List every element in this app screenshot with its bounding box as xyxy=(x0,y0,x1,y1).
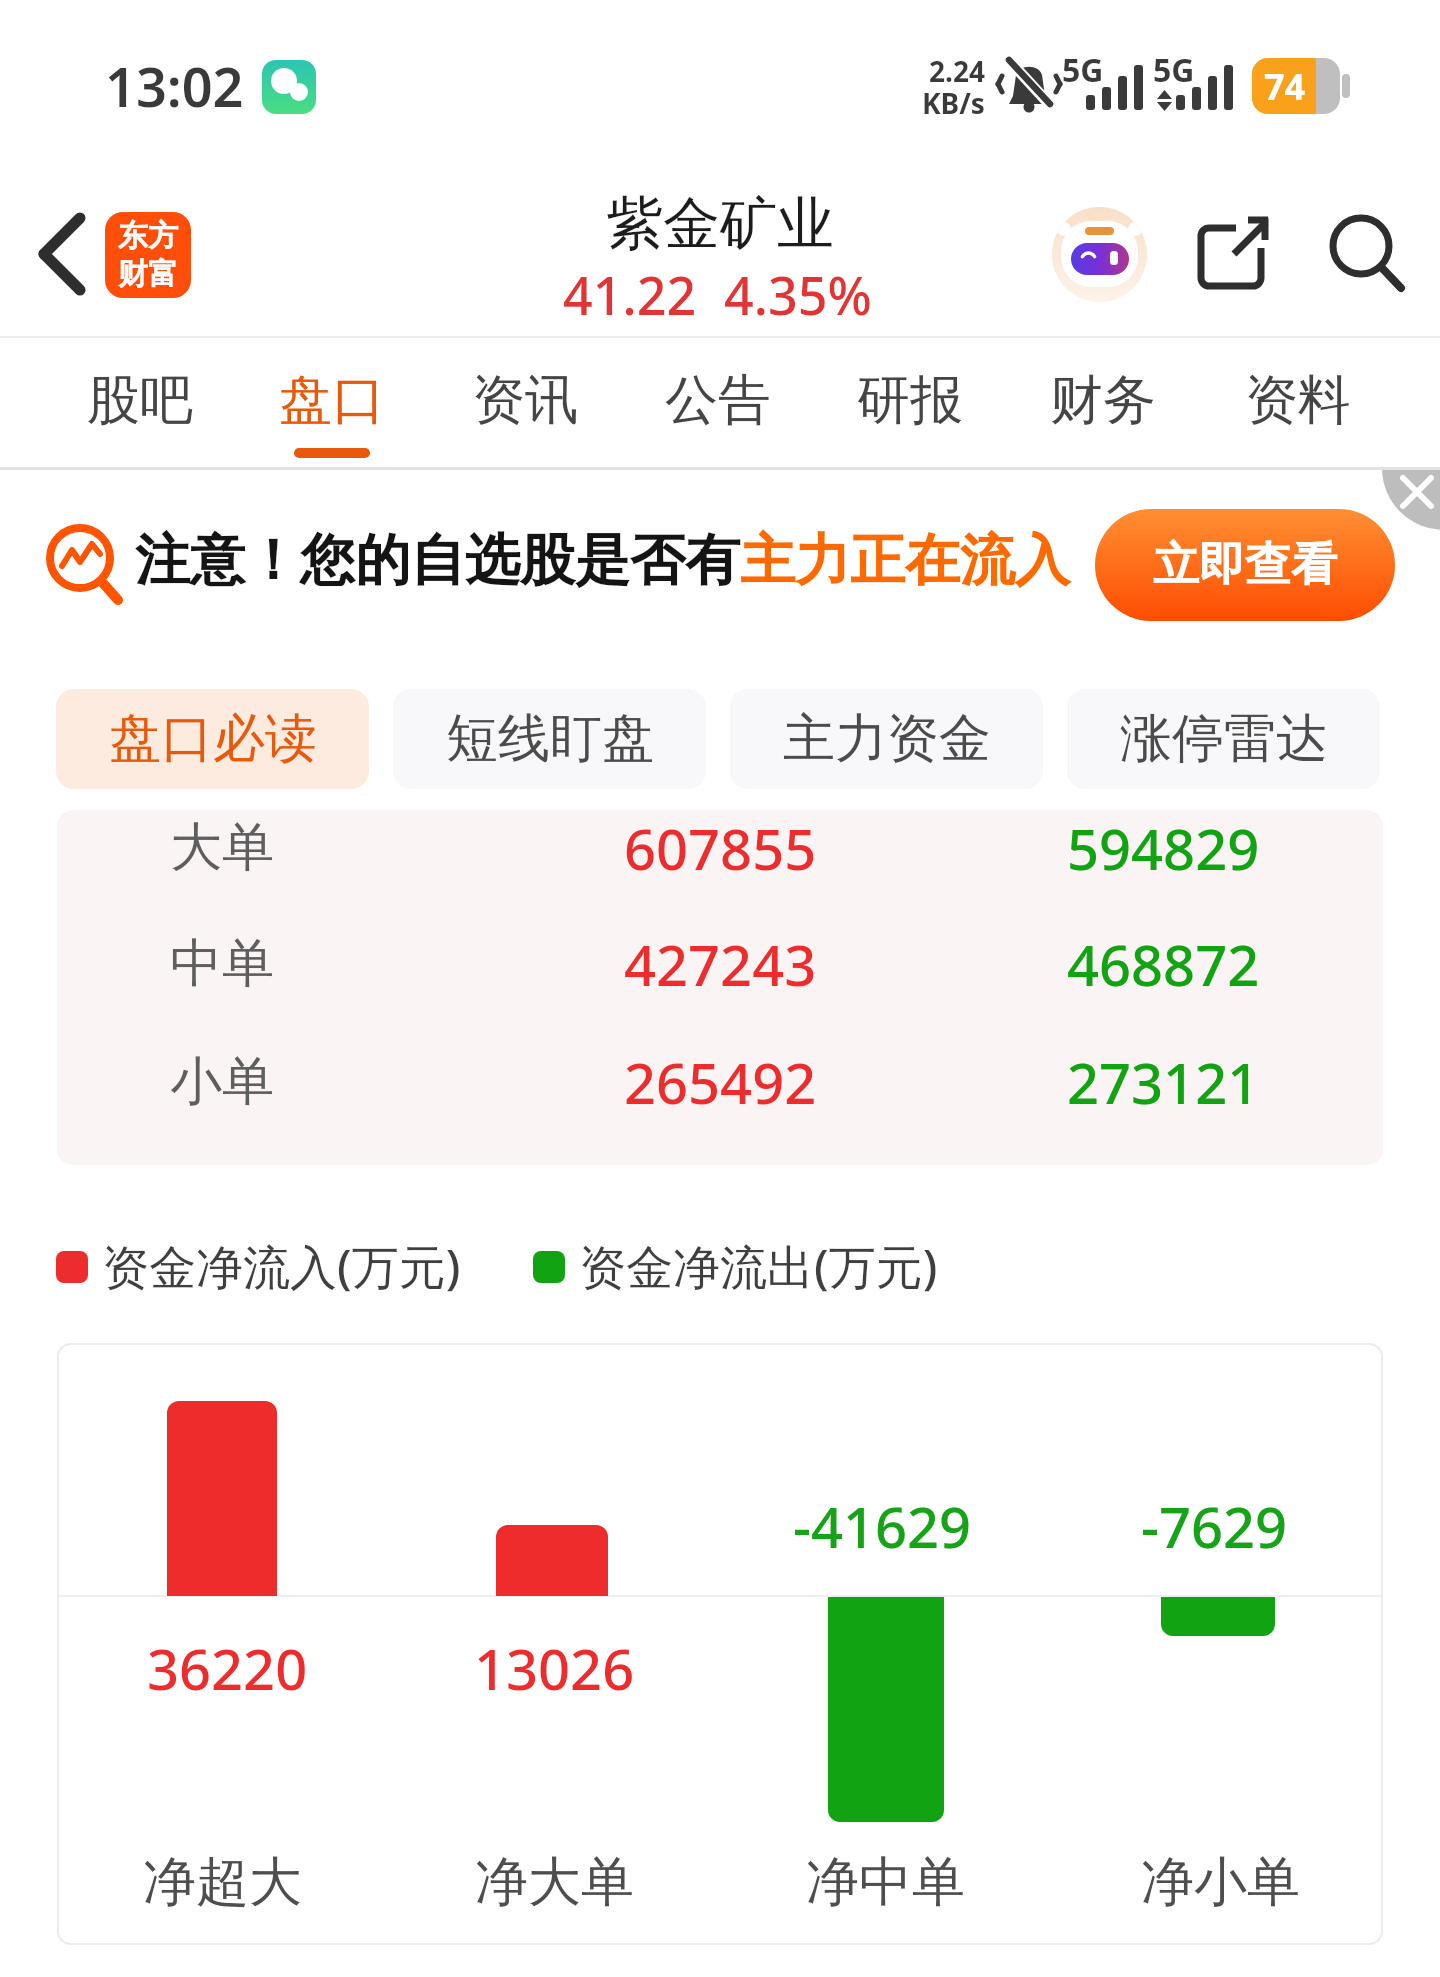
staticText: 净中单 xyxy=(806,1849,965,1916)
staticText: 短线盯盘 xyxy=(446,706,654,772)
button[interactable] xyxy=(28,208,100,300)
staticText: 东方 xyxy=(118,217,178,255)
staticText: 265492 xyxy=(624,1044,817,1120)
button[interactable]: 立即查看 xyxy=(1095,509,1395,621)
staticText: 资金净流出(万元) xyxy=(579,1234,938,1298)
button[interactable] xyxy=(1198,216,1272,290)
staticText: 公告 xyxy=(665,367,771,434)
staticText: -7629 xyxy=(1141,1488,1288,1564)
button[interactable]: 盘口 xyxy=(236,352,428,448)
staticText: 股吧 xyxy=(87,367,193,434)
staticText: 资讯 xyxy=(472,367,578,434)
button[interactable]: 研报 xyxy=(814,352,1006,448)
button[interactable]: 短线盯盘 xyxy=(393,689,706,789)
staticText: 注意！您的自选股是否有 xyxy=(135,526,740,595)
staticText: 2.24 xyxy=(929,52,985,86)
staticText: 74 xyxy=(1264,62,1306,111)
button[interactable]: 主力资金 xyxy=(730,689,1043,789)
staticText: 5G xyxy=(1153,48,1195,92)
button[interactable]: 股吧 xyxy=(44,352,236,448)
staticText: 净大单 xyxy=(475,1849,634,1916)
staticText: 4.35% xyxy=(724,259,872,330)
staticText: 资料 xyxy=(1245,367,1351,434)
staticText: 主力正在流入 xyxy=(740,526,1070,595)
staticText: 小单 xyxy=(170,1049,274,1115)
button[interactable] xyxy=(1380,470,1440,530)
staticText: -41629 xyxy=(793,1488,972,1564)
staticText: 资金净流入(万元) xyxy=(102,1234,461,1298)
button[interactable]: 资讯 xyxy=(429,352,621,448)
staticText: 财务 xyxy=(1050,367,1156,434)
button[interactable]: 财务 xyxy=(1007,352,1199,448)
button[interactable]: 涨停雷达 xyxy=(1067,689,1380,789)
button[interactable] xyxy=(1052,207,1147,302)
staticText: 净小单 xyxy=(1141,1849,1300,1916)
staticText: 主力资金 xyxy=(783,706,991,772)
button[interactable]: 公告 xyxy=(622,352,814,448)
staticText: 中单 xyxy=(170,931,274,997)
button[interactable]: 资料 xyxy=(1202,352,1394,448)
staticText: 13026 xyxy=(474,1630,635,1706)
staticText: 41.22 xyxy=(563,259,697,330)
staticText: 427243 xyxy=(624,926,817,1002)
staticText: 468872 xyxy=(1067,926,1260,1002)
staticText: 273121 xyxy=(1067,1044,1260,1120)
staticText: 盘口 xyxy=(279,367,385,434)
staticText: 立即查看 xyxy=(1153,536,1337,594)
staticText: 607855 xyxy=(624,810,817,886)
button[interactable]: 东方 xyxy=(105,212,191,298)
staticText: 盘口必读 xyxy=(109,706,317,772)
staticText: 大单 xyxy=(170,815,274,881)
staticText: 紫金矿业 xyxy=(606,188,834,260)
staticText: 5G xyxy=(1062,48,1104,92)
button[interactable] xyxy=(1326,212,1406,292)
staticText: 财富 xyxy=(118,255,178,293)
button[interactable]: 盘口必读 xyxy=(56,689,369,789)
staticText: 36220 xyxy=(147,1630,308,1706)
staticText: 涨停雷达 xyxy=(1120,706,1328,772)
staticText: 研报 xyxy=(857,367,963,434)
staticText: 13:02 xyxy=(105,49,244,123)
staticText: 594829 xyxy=(1067,810,1260,886)
staticText: KB/s xyxy=(922,84,985,118)
staticText: 净超大 xyxy=(143,1849,302,1916)
